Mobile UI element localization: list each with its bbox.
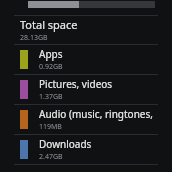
button[interactable]: Audio (music, ringtones, podc.. colour s… xyxy=(0,105,172,134)
staticText: Apps xyxy=(39,47,63,61)
staticText: Audio (music, ringtones, podc.. xyxy=(39,107,166,121)
staticText: 0.92GB xyxy=(39,62,63,72)
button[interactable]: Pictures, videos colour swatch xyxy=(0,75,172,104)
button[interactable]: Apps colour swatch xyxy=(0,45,172,74)
staticText: Downloads xyxy=(39,137,92,151)
staticText: Pictures, videos xyxy=(39,77,113,91)
staticText: 119MB xyxy=(39,122,62,132)
staticText: 1.37GB xyxy=(39,92,63,102)
staticText: Total space xyxy=(20,17,78,32)
staticText: 28.13GB xyxy=(20,33,48,43)
button[interactable]: Total space xyxy=(0,16,172,44)
staticText: 2.47GB xyxy=(39,152,63,162)
button[interactable]: Downloads colour swatch xyxy=(0,135,172,164)
